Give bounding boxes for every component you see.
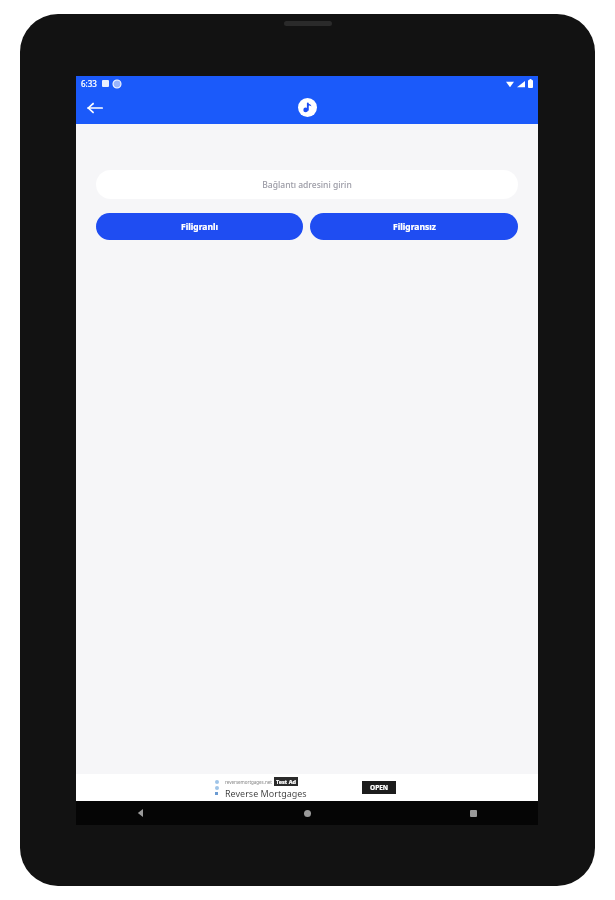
button[interactable]: Bağlantı adresini girin — [96, 170, 518, 199]
staticText: Filigransız — [393, 221, 436, 233]
button[interactable]: Recent apps — [462, 802, 484, 824]
staticText: reversemortgages.net — [225, 779, 272, 785]
button[interactable]: App logo — [298, 98, 317, 117]
button[interactable]: OPEN — [362, 781, 396, 794]
button[interactable]: Back — [82, 95, 108, 121]
button[interactable]: reversemortgages.net — [212, 774, 402, 801]
staticText: OPEN — [370, 783, 389, 792]
button[interactable]: Filigranlı — [96, 213, 303, 240]
staticText: 6:33 — [81, 78, 97, 89]
staticText: Filigranlı — [181, 221, 218, 233]
staticText: Reverse Mortgages — [225, 787, 307, 799]
button[interactable]: Filigransız — [310, 213, 518, 240]
button[interactable]: Home — [296, 802, 318, 824]
button[interactable]: Back — [130, 802, 152, 824]
staticText: Test Ad — [276, 778, 296, 785]
staticText: Bağlantı adresini girin — [262, 179, 352, 191]
